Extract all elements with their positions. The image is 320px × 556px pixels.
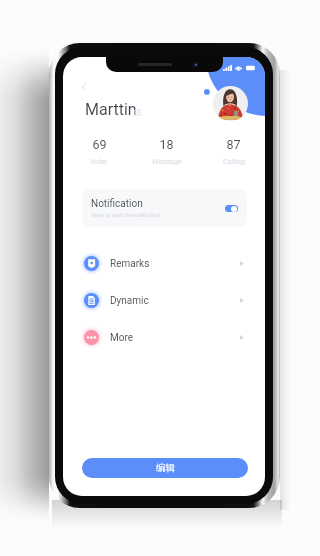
button[interactable]: 编辑 — [82, 458, 248, 478]
staticText: Dynamic — [110, 295, 149, 307]
button[interactable]: More — [63, 319, 265, 356]
staticText: Message — [152, 157, 182, 165]
staticText: Notification — [91, 198, 143, 210]
staticText: 69 — [92, 137, 107, 152]
staticText: 编辑 — [156, 462, 175, 474]
staticText: Remarks — [110, 258, 150, 270]
staticText: Voter — [90, 157, 108, 165]
button[interactable]: Edit name — [134, 109, 141, 116]
button[interactable]: 69 — [65, 137, 133, 165]
button[interactable]: 87 — [200, 137, 265, 165]
staticText: 18 — [159, 137, 174, 152]
button[interactable]: Dynamic — [63, 282, 265, 319]
button[interactable]: Remarks — [63, 245, 265, 282]
button[interactable]: Notification toggle — [225, 205, 238, 212]
button[interactable]: Notification — [83, 189, 247, 227]
button[interactable]: 18 — [133, 137, 200, 165]
staticText: Calling — [223, 157, 245, 165]
staticText: 87 — [226, 137, 241, 152]
button[interactable]: Profile photo — [213, 86, 248, 121]
staticText: Allow to push the notification — [91, 212, 161, 218]
staticText: More — [110, 332, 134, 344]
button[interactable]: Back — [77, 79, 92, 94]
staticText: Marttin — [85, 100, 137, 119]
